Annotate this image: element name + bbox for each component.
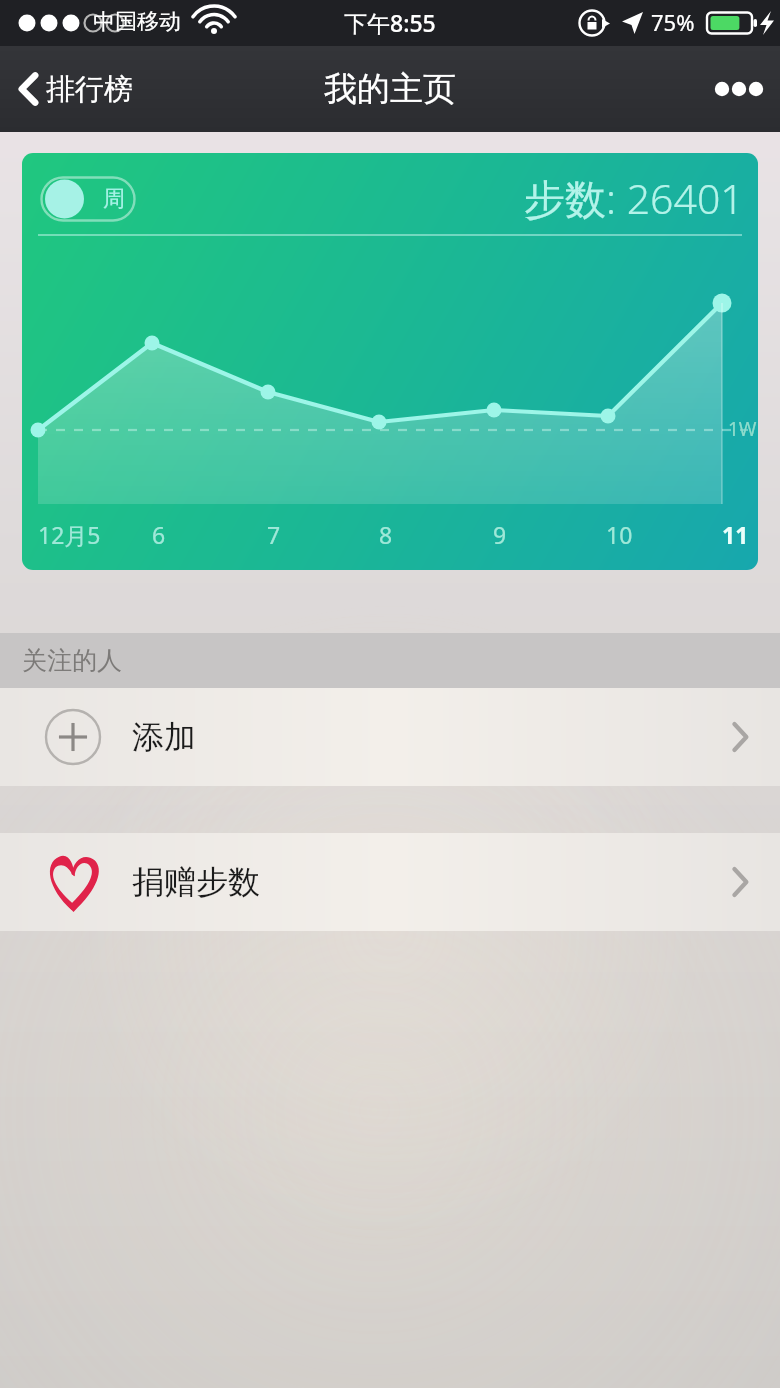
button[interactable]: More options [686,46,780,132]
staticText: 75% [651,7,695,37]
staticText: 捐赠步数 [132,862,260,902]
staticText: 1W [728,416,757,442]
staticText: 我的主页 [324,68,456,110]
staticText: 11 [722,519,749,550]
staticText: 下午8:55 [344,7,436,38]
staticText: 10 [606,519,633,550]
staticText: 中国移动 [93,8,181,36]
button[interactable]: 捐赠步数 [0,833,780,931]
staticText: 步数: 26401 [524,170,744,226]
button[interactable]: 添加 [0,688,780,786]
staticText: 7 [267,519,281,550]
staticText: 关注的人 [22,645,122,676]
staticText: 周 [103,185,125,213]
staticText: 排行榜 [46,71,133,108]
staticText: 9 [493,519,507,550]
button[interactable]: Switch period [40,176,136,222]
button[interactable]: 排行榜 [0,46,147,132]
staticText: 8 [379,519,393,550]
staticText: 12月5 [38,519,101,550]
staticText: 6 [152,519,166,550]
button[interactable]: Switch period [22,153,758,570]
staticText: 添加 [132,717,196,757]
